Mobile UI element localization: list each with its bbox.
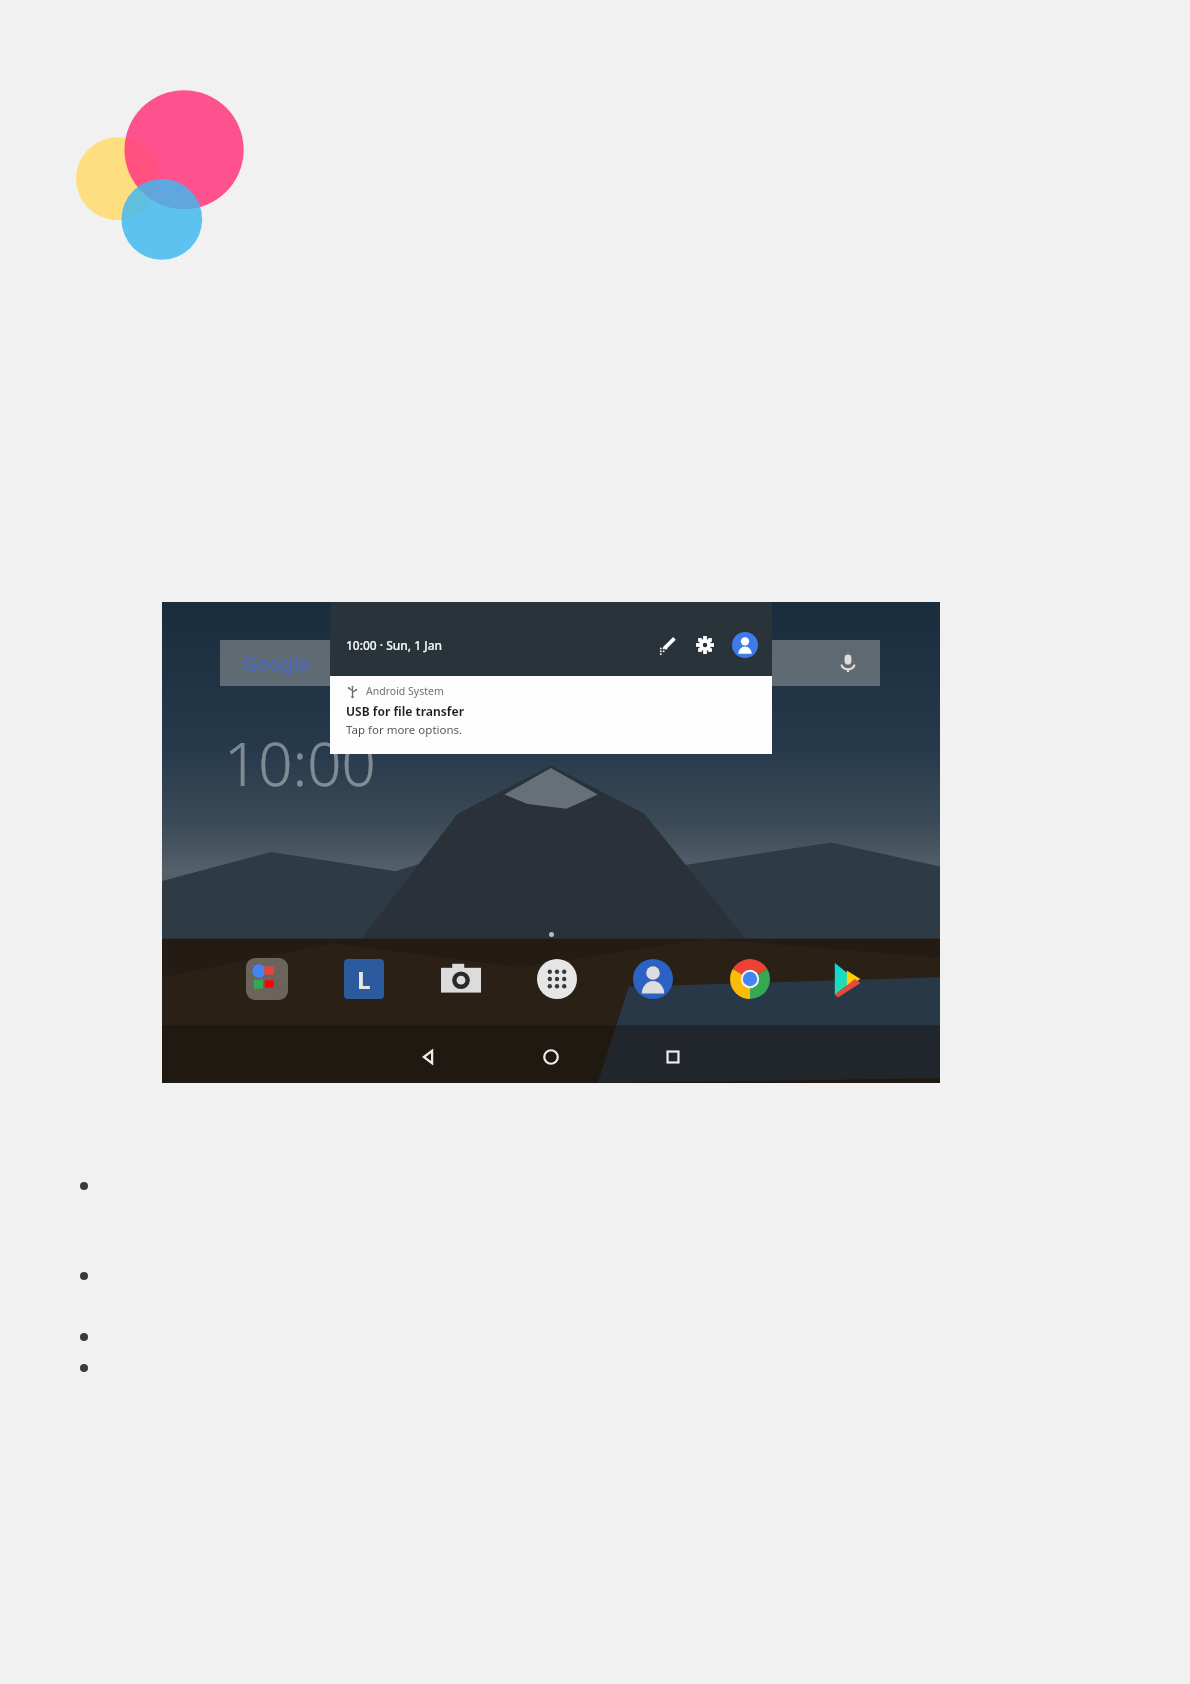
button[interactable]: User profile: [732, 632, 758, 658]
button[interactable]: Voice search: [838, 653, 858, 673]
staticText: Android System: [366, 684, 444, 698]
staticText: 10:00: [224, 722, 376, 804]
staticText: USB for file transfer: [346, 703, 465, 719]
button[interactable]: All apps: [537, 959, 577, 999]
staticText: L: [357, 963, 371, 996]
button[interactable]: Google: [220, 640, 880, 686]
button[interactable]: Contacts: [633, 959, 673, 999]
button[interactable]: Android System: [330, 676, 772, 754]
button[interactable]: Recent apps: [660, 1044, 686, 1070]
button[interactable]: Camera: [441, 959, 481, 999]
button[interactable]: Google folder: [246, 958, 288, 1000]
button[interactable]: Chrome: [730, 959, 770, 999]
button[interactable]: Lenovo app: [344, 959, 384, 999]
staticText: 10:00 · Sun, 1 Jan: [346, 637, 443, 653]
button[interactable]: Play Store: [826, 959, 866, 999]
button[interactable]: Edit quick settings: [656, 634, 678, 656]
staticText: Google: [242, 650, 311, 677]
button[interactable]: Home: [538, 1044, 564, 1070]
staticText: Tap for more options.: [346, 722, 463, 738]
button[interactable]: Back: [416, 1044, 442, 1070]
button[interactable]: Settings: [694, 634, 716, 656]
